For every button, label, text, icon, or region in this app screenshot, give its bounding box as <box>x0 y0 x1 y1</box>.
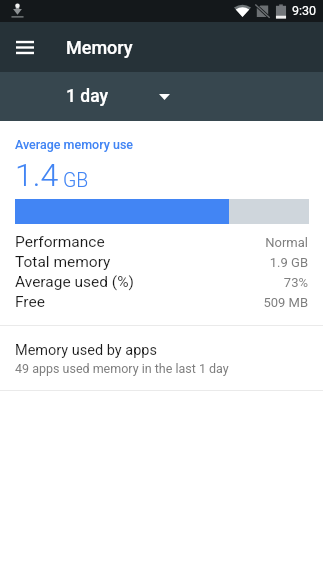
staticText: 1.4 <box>15 156 59 194</box>
staticText: 509 MB <box>53 295 308 310</box>
staticText: Memory used by apps <box>15 342 157 359</box>
staticText: GB <box>63 169 89 192</box>
staticText: Normal <box>113 235 308 250</box>
staticText: Performance <box>15 233 105 251</box>
staticText: 49 apps used memory in the last 1 day <box>15 361 229 376</box>
staticText: Memory <box>66 37 133 58</box>
staticText: 73% <box>142 275 308 290</box>
staticText: 9:30 <box>292 3 317 18</box>
button[interactable]: Memory used by apps <box>0 326 323 390</box>
staticText: 1 day <box>66 86 109 107</box>
staticText: Average used (%) <box>15 273 134 291</box>
staticText: Average memory use <box>15 137 134 152</box>
button[interactable]: Open navigation drawer <box>0 23 48 71</box>
staticText: 1.9 GB <box>119 255 308 270</box>
staticText: Free <box>15 293 45 311</box>
staticText: Total memory <box>15 253 111 271</box>
button[interactable]: 1 day <box>56 78 180 115</box>
